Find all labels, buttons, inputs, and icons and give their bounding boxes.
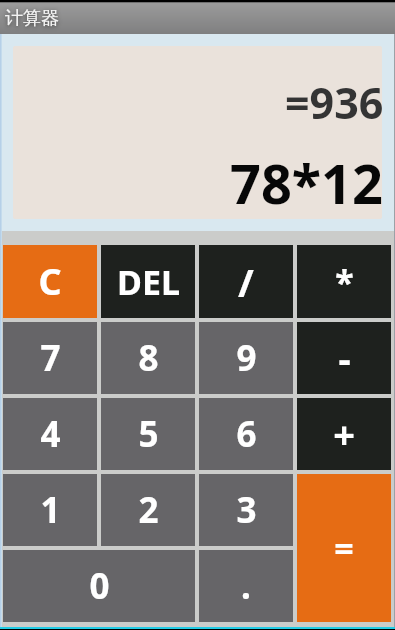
staticText: 2	[138, 486, 159, 534]
button[interactable]: 7	[3, 322, 97, 394]
button[interactable]: 6	[199, 398, 293, 470]
staticText: 计算器	[5, 7, 59, 30]
button[interactable]: DEL	[101, 245, 195, 318]
staticText: 0	[89, 562, 110, 610]
staticText: 5	[138, 410, 159, 458]
button[interactable]: 0	[3, 550, 195, 622]
staticText: 1	[40, 486, 61, 534]
staticText: .	[241, 562, 251, 610]
button[interactable]: 1	[3, 474, 97, 546]
staticText: DEL	[117, 259, 180, 305]
staticText: *	[335, 259, 354, 305]
button[interactable]: /	[199, 245, 293, 318]
button[interactable]: 3	[199, 474, 293, 546]
staticText: 8	[138, 334, 159, 382]
button[interactable]: =	[297, 474, 391, 622]
staticText: 78*12	[230, 146, 382, 219]
staticText: 4	[40, 410, 61, 458]
button[interactable]: *	[297, 245, 391, 318]
button[interactable]: 4	[3, 398, 97, 470]
button[interactable]: 9	[199, 322, 293, 394]
button[interactable]: -	[297, 322, 391, 394]
button[interactable]: 5	[101, 398, 195, 470]
button[interactable]: 8	[101, 322, 195, 394]
staticText: /	[238, 256, 254, 308]
staticText: =936	[285, 73, 382, 132]
staticText: -	[338, 332, 351, 384]
button[interactable]: C	[3, 245, 97, 318]
staticText: 3	[236, 486, 257, 534]
button[interactable]: 2	[101, 474, 195, 546]
staticText: 6	[236, 410, 257, 458]
staticText: 7	[40, 334, 61, 382]
staticText: C	[38, 257, 62, 306]
button[interactable]: +	[297, 398, 391, 470]
staticText: =	[334, 525, 354, 571]
staticText: +	[333, 408, 355, 460]
staticText: 9	[236, 334, 257, 382]
button[interactable]: .	[199, 550, 293, 622]
